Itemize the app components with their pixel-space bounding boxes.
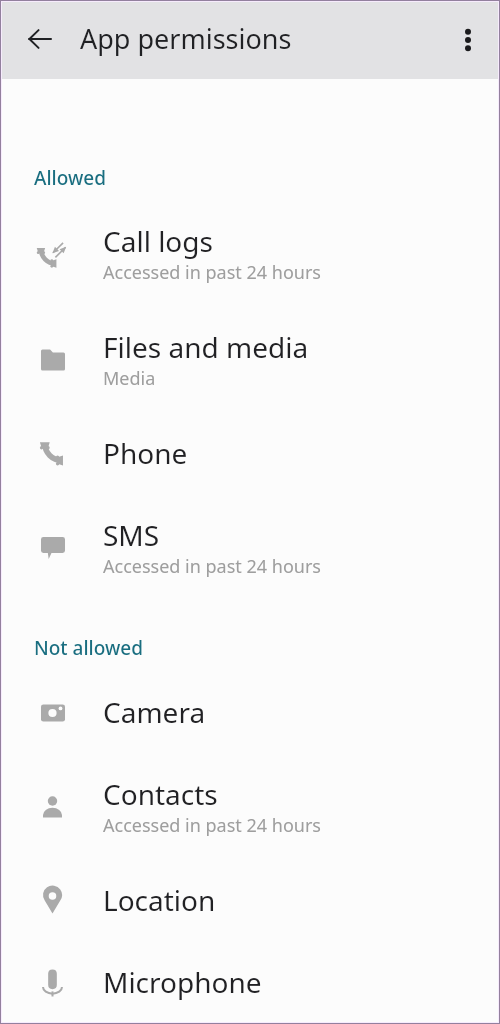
button[interactable]: Microphone (2, 945, 498, 1022)
staticText: Phone (103, 434, 188, 472)
button[interactable]: Back (17, 16, 63, 62)
button[interactable]: Files and media (2, 310, 498, 416)
button[interactable]: Location (2, 863, 498, 945)
staticText: Accessed in past 24 hours (103, 554, 321, 579)
button[interactable]: Contacts (2, 757, 498, 863)
button[interactable]: Camera (2, 675, 498, 757)
staticText: Microphone (103, 963, 262, 1001)
staticText: Files and media (103, 328, 309, 366)
staticText: Allowed (34, 165, 106, 191)
staticText: Media (103, 366, 156, 391)
staticText: Accessed in past 24 hours (103, 813, 321, 838)
button[interactable]: Call logs (2, 204, 498, 310)
staticText: App permissions (80, 20, 292, 57)
button[interactable]: More options (446, 18, 490, 62)
staticText: Camera (103, 693, 206, 731)
staticText: Not allowed (34, 635, 143, 661)
staticText: Location (103, 881, 216, 919)
button[interactable]: Phone (2, 416, 498, 498)
button[interactable]: SMS (2, 498, 498, 604)
staticText: Contacts (103, 775, 218, 813)
staticText: Accessed in past 24 hours (103, 260, 321, 285)
staticText: Call logs (103, 222, 213, 260)
staticText: SMS (103, 516, 160, 554)
